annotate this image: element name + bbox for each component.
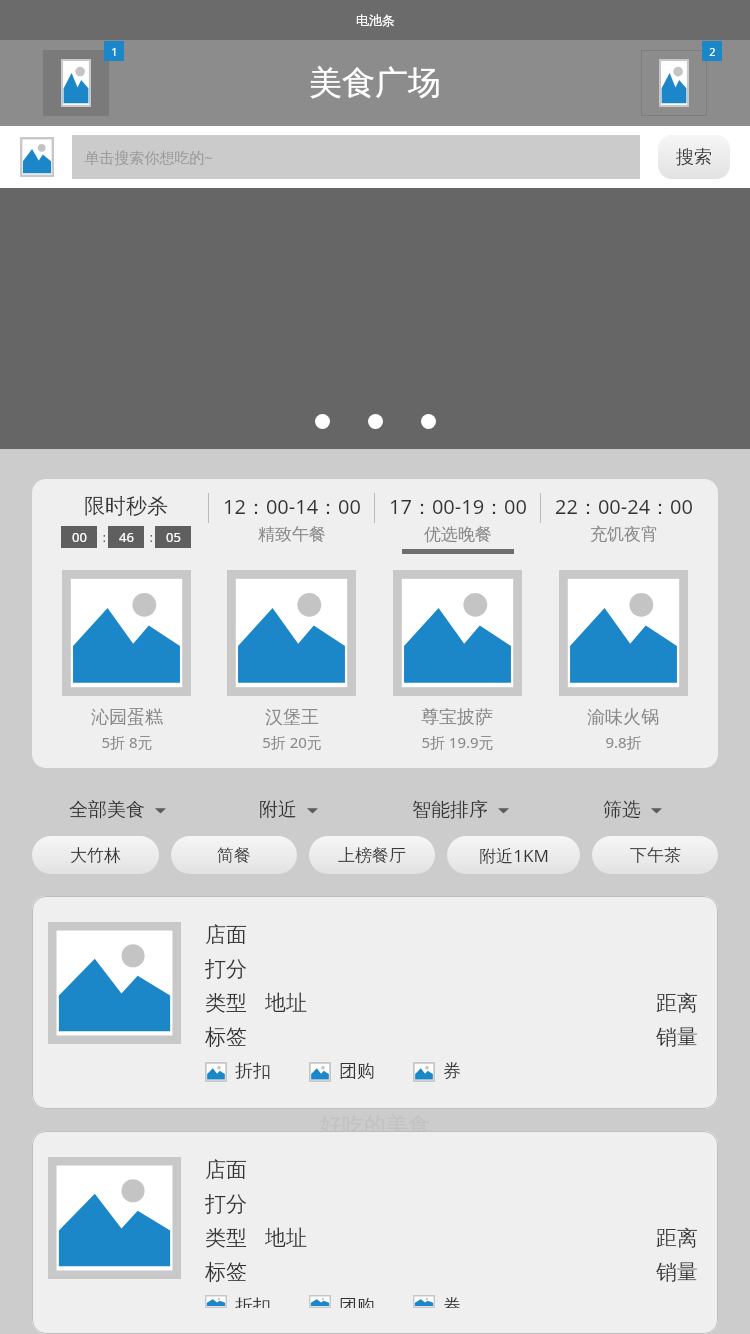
staticText: 大竹林 — [70, 845, 121, 866]
staticText: 附近1KM — [479, 844, 549, 867]
staticText: 单击搜索你想吃的~ — [84, 147, 213, 167]
staticText: 地址 — [265, 990, 307, 1016]
button[interactable]: 沁园蛋糕 — [44, 570, 209, 752]
staticText: 沁园蛋糕 — [91, 706, 163, 729]
staticText: 智能排序 — [412, 798, 488, 822]
staticText: 电池条 — [356, 12, 395, 28]
staticText: 类型 — [205, 1225, 247, 1251]
staticText: 46 — [119, 528, 134, 546]
staticText: 1 — [111, 44, 118, 59]
staticText: 店面 — [205, 1157, 247, 1183]
staticText: 标签 — [205, 1259, 247, 1285]
staticText: 精致午餐 — [258, 524, 326, 545]
staticText: 美食广场 — [309, 62, 441, 104]
button[interactable]: 搜索 — [658, 135, 730, 179]
staticText: 下午茶 — [630, 845, 681, 866]
staticText: 券 — [443, 1060, 461, 1083]
staticText: : — [97, 528, 108, 546]
staticText: 2 — [709, 44, 716, 59]
staticText: 9.8折 — [605, 732, 642, 752]
button[interactable]: 单击搜索你想吃的~ — [72, 135, 640, 179]
staticText: 渝味火锅 — [587, 706, 659, 729]
staticText: 22：00-24：00 — [555, 493, 693, 520]
staticText: 店面 — [205, 922, 247, 948]
staticText: 好吃的美食 — [320, 1112, 430, 1140]
button[interactable]: 店面 — [32, 1131, 718, 1334]
staticText: 尊宝披萨 — [421, 706, 493, 729]
staticText: 打分 — [205, 956, 247, 982]
staticText: 简餐 — [217, 845, 251, 866]
button[interactable]: 汉堡王 — [209, 570, 374, 752]
staticText: 5折 20元 — [262, 732, 322, 752]
staticText: 券 — [443, 1295, 461, 1308]
button[interactable]: 附近 — [203, 798, 374, 822]
staticText: 全部美食 — [69, 798, 145, 822]
staticText: 筛选 — [603, 798, 641, 822]
staticText: 05 — [166, 528, 181, 546]
staticText: 地址 — [265, 1225, 307, 1251]
staticText: 搜索 — [676, 146, 712, 169]
staticText: 5折 19.9元 — [421, 732, 494, 752]
button[interactable]: 筛选 — [546, 798, 718, 822]
staticText: : — [144, 528, 155, 546]
staticText: 上榜餐厅 — [338, 845, 406, 866]
staticText: 团购 — [339, 1060, 375, 1083]
button[interactable]: 尊宝披萨 — [374, 570, 540, 752]
staticText: 销量 — [656, 1024, 698, 1050]
staticText: 类型 — [205, 990, 247, 1016]
staticText: 折扣 — [235, 1295, 271, 1308]
button[interactable]: Cart — [638, 47, 710, 119]
staticText: 销量 — [656, 1259, 698, 1285]
button[interactable]: 下午茶 — [592, 836, 718, 874]
staticText: 17：00-19：00 — [389, 493, 527, 520]
button[interactable]: 17：00-19：00 — [375, 493, 540, 554]
button[interactable]: 22：00-24：00 — [541, 493, 706, 554]
button[interactable]: 全部美食 — [32, 798, 203, 822]
button[interactable]: 大竹林 — [32, 836, 159, 874]
button[interactable]: 附近1KM — [447, 836, 580, 874]
staticText: 团购 — [339, 1295, 375, 1308]
button[interactable]: 渝味火锅 — [540, 570, 706, 752]
staticText: 限时秒杀 — [84, 493, 168, 519]
staticText: 标签 — [205, 1024, 247, 1050]
button[interactable]: 智能排序 — [374, 798, 546, 822]
staticText: 打分 — [205, 1191, 247, 1217]
staticText: 距离 — [656, 1225, 698, 1251]
staticText: 折扣 — [235, 1060, 271, 1083]
button[interactable]: 限时秒杀 — [44, 493, 208, 548]
staticText: 距离 — [656, 990, 698, 1016]
button[interactable]: Messages — [40, 47, 112, 119]
staticText: 优选晚餐 — [424, 524, 492, 545]
staticText: 附近 — [259, 798, 297, 822]
staticText: 00 — [72, 528, 87, 546]
button[interactable]: 12：00-14：00 — [209, 493, 374, 554]
button[interactable]: 店面 — [32, 896, 718, 1109]
staticText: 5折 8元 — [101, 732, 153, 752]
staticText: 汉堡王 — [265, 706, 319, 729]
button[interactable]: 简餐 — [171, 836, 297, 874]
button[interactable]: 上榜餐厅 — [309, 836, 435, 874]
staticText: 充饥夜宵 — [590, 524, 658, 545]
staticText: 12：00-14：00 — [223, 493, 361, 520]
